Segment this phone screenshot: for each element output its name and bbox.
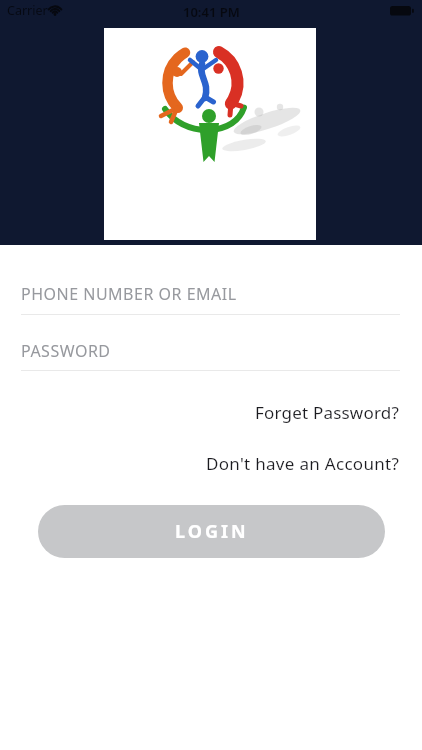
button[interactable]: PASSWORD [21,340,400,371]
button[interactable]: Forget Password? [255,401,400,424]
staticText: PHONE NUMBER OR EMAIL [21,283,237,305]
button[interactable]: LOGIN [38,505,385,558]
staticText: Don't have an Account? [206,452,400,475]
staticText: 10:41 PM [183,3,240,21]
staticText: LOGIN [175,519,249,544]
staticText: Forget Password? [255,401,400,424]
staticText: PASSWORD [21,340,111,362]
staticText: Carrier [7,2,48,19]
button[interactable]: Don't have an Account? [206,452,400,475]
button[interactable]: PHONE NUMBER OR EMAIL [21,283,400,315]
